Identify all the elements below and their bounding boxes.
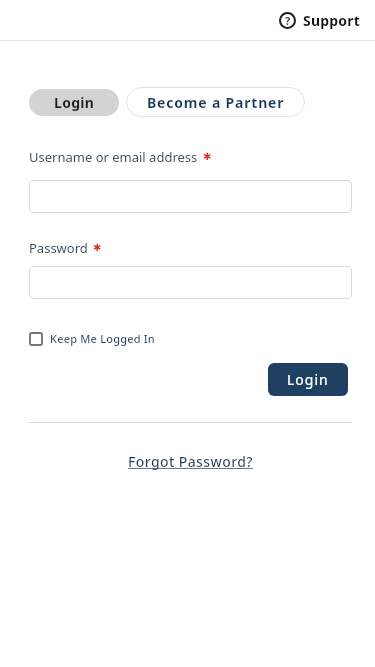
staticText: Login [287,370,329,389]
button[interactable]: Become a Partner [126,87,305,117]
button[interactable]: Keep Me Logged In [29,331,155,346]
button[interactable]: Login [29,89,119,116]
staticText: Become a Partner [147,93,285,112]
staticText: ✱ [203,151,212,163]
button[interactable]: Forgot Password? [128,452,253,471]
button[interactable] [29,180,352,213]
staticText: ✱ [93,242,102,254]
button[interactable] [29,266,352,299]
staticText: ? [285,13,291,28]
staticText: Support [303,11,360,30]
button[interactable]: Login [268,363,348,396]
staticText: Password [29,239,88,257]
staticText: Keep Me Logged In [50,331,155,346]
button[interactable]: ? [279,11,360,30]
staticText: Login [54,93,95,112]
staticText: Username or email address [29,148,198,166]
